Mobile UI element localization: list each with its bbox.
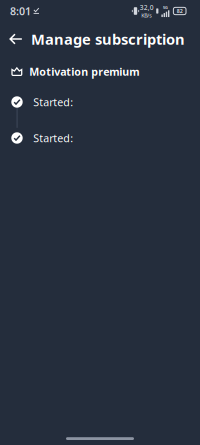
button[interactable]: Back [4, 27, 28, 51]
staticText: Motivation premium [29, 64, 139, 79]
staticText: 8:01 [10, 4, 31, 18]
staticText: Started: [33, 131, 73, 145]
staticText: KB/s [141, 12, 152, 19]
button[interactable]: Started: [11, 120, 199, 156]
button[interactable]: Started: [11, 84, 199, 120]
staticText: 5G [163, 5, 168, 10]
staticText: 82 [177, 7, 183, 15]
staticText: Manage subscription [31, 29, 185, 49]
staticText: Started: [33, 95, 73, 109]
staticText: 32,0 [140, 3, 154, 12]
